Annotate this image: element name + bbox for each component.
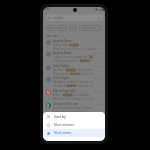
staticText: G: [47, 104, 50, 108]
staticText: Jun 5: [97, 39, 103, 42]
staticText: plan this summer in: [53, 59, 80, 62]
staticText: Apr 2: [97, 102, 103, 105]
staticText: Inbox: [53, 93, 63, 97]
button[interactable]: John Taylor: [46, 64, 103, 75]
button[interactable]: Attachment: [79, 25, 102, 31]
staticText: We are coming around to taking your time: [53, 97, 94, 100]
staticText: Lab results: [73, 93, 90, 97]
button[interactable]: M: [46, 89, 103, 100]
staticText: Inbox Hi, just a heads up: [53, 55, 89, 59]
staticText: May 28: [94, 51, 103, 54]
other: Close: [47, 115, 50, 118]
staticText: M: [47, 91, 50, 95]
button[interactable]: John Taylor: [46, 76, 103, 87]
staticText: From: [57, 26, 64, 30]
button[interactable]: Most relevant: [47, 121, 102, 129]
staticText: John Taylor: [53, 64, 70, 68]
staticText: Angela Ryan: [53, 39, 72, 43]
button[interactable]: Label: [45, 25, 55, 31]
staticText: Angela: [67, 84, 77, 87]
staticText: This is what: [53, 72, 70, 75]
other: Search: [48, 17, 51, 20]
button[interactable]: Best match: [46, 34, 64, 38]
staticText: Attachment: [82, 26, 97, 30]
button[interactable]: G: [46, 102, 103, 113]
staticText: booked for us: [80, 72, 93, 75]
staticText: Angela: [80, 59, 90, 62]
staticText: from unter hause: [77, 84, 93, 87]
staticText: 9:30: [44, 7, 51, 11]
button[interactable]: From: [57, 25, 67, 31]
staticText: May 21: [94, 64, 103, 67]
staticText: Angela: [69, 43, 79, 47]
other: Clear search: [98, 17, 101, 20]
button[interactable]: Most recent: [47, 129, 102, 137]
staticText: angela: [53, 16, 64, 20]
staticText: Angela: [63, 93, 73, 97]
button[interactable]: Angela Ryan: [46, 39, 103, 50]
staticText: Inbox Hey: [53, 43, 69, 47]
staticText: Promise us a call back - is talking tomo…: [53, 47, 96, 50]
staticText: Lunch check-in today please: [53, 106, 92, 110]
button[interactable]: Search: [46, 14, 103, 21]
button[interactable]: Angela Ryan: [46, 51, 103, 62]
staticText: Label: [45, 26, 52, 30]
staticText: Angela: [70, 72, 80, 75]
staticText: Maria Page Vet: [53, 89, 76, 93]
staticText: Best match: [46, 34, 61, 38]
staticText: Groups Chat, me: [53, 102, 78, 106]
staticText: has a house: [76, 68, 93, 72]
staticText: To: [70, 26, 73, 30]
staticText: My fave is: [53, 84, 67, 87]
staticText: May 14: [94, 76, 103, 79]
button[interactable]: To: [69, 25, 77, 31]
staticText: Most relevant: [54, 123, 74, 127]
staticText: 's place: [90, 59, 93, 62]
staticText: Most recent: [54, 131, 72, 135]
button[interactable]: Close: [47, 112, 102, 121]
staticText: Angela: [89, 55, 93, 59]
staticText: Re: Trip -: [53, 68, 66, 72]
staticText: Angela Ryan: [53, 51, 72, 55]
staticText: Angela: [66, 68, 76, 72]
staticText: John Taylor: [53, 76, 70, 80]
staticText: Apr 30: [95, 89, 103, 92]
staticText: Lunch check-in today for us: [53, 110, 90, 113]
staticText: So happy to hear from you - great suppor…: [53, 80, 93, 84]
staticText: Sort by: [54, 114, 66, 119]
